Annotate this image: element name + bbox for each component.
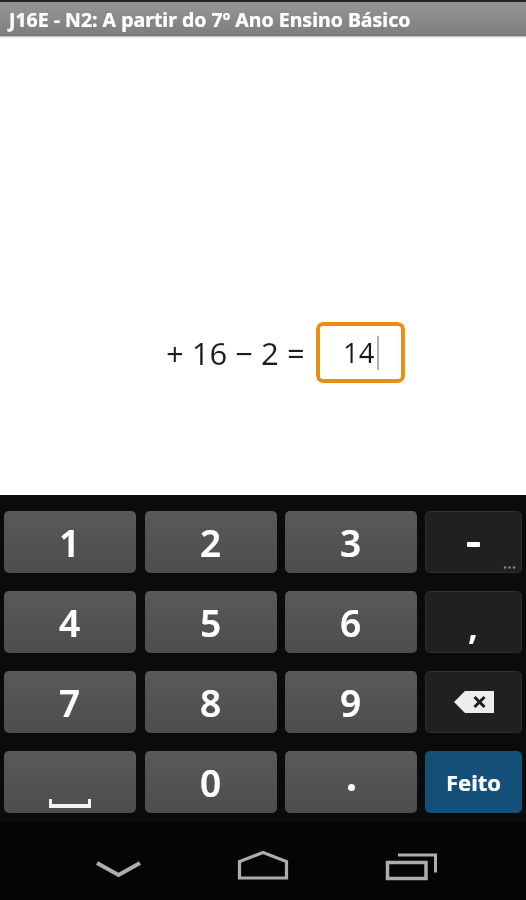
staticText: 2: [200, 517, 222, 567]
button[interactable]: 4: [4, 591, 136, 653]
staticText: 7: [59, 677, 81, 727]
staticText: Feito: [446, 767, 502, 797]
staticText: + 16 − 2 =: [166, 332, 305, 374]
staticText: 6: [340, 597, 362, 647]
staticText: 1: [59, 517, 81, 567]
button[interactable]: 6: [285, 591, 417, 653]
staticText: 9: [340, 677, 362, 727]
staticText: 5: [200, 597, 222, 647]
button[interactable]: [4, 751, 136, 813]
staticText: 0: [200, 757, 222, 807]
button[interactable]: 0: [145, 751, 277, 813]
button[interactable]: 14: [316, 322, 405, 383]
button[interactable]: Feito: [425, 751, 522, 813]
staticText: 8: [200, 677, 222, 727]
button[interactable]: 7: [4, 671, 136, 733]
button[interactable]: [380, 840, 445, 890]
button[interactable]: [425, 511, 522, 573]
staticText: J16E - N2: A partir do 7º Ano Ensino Bás…: [9, 6, 411, 33]
button[interactable]: ,: [425, 591, 522, 653]
button[interactable]: [230, 840, 295, 890]
staticText: 3: [340, 517, 362, 567]
staticText: 4: [59, 597, 81, 647]
button[interactable]: 3: [285, 511, 417, 573]
button[interactable]: [285, 751, 417, 813]
staticText: ,: [468, 601, 479, 650]
button[interactable]: 9: [285, 671, 417, 733]
staticText: 14: [343, 334, 375, 371]
button[interactable]: 8: [145, 671, 277, 733]
button[interactable]: 2: [145, 511, 277, 573]
button[interactable]: [85, 840, 150, 890]
button[interactable]: 5: [145, 591, 277, 653]
button[interactable]: [425, 671, 522, 733]
button[interactable]: 1: [4, 511, 136, 573]
